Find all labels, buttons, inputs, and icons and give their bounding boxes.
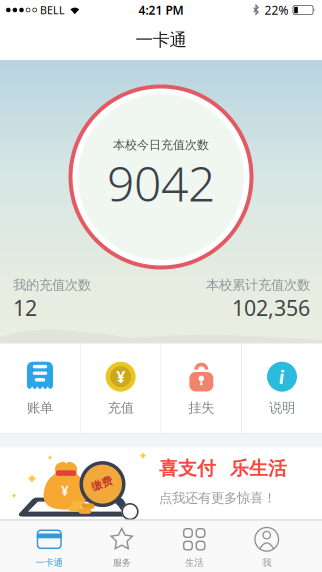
staticText: 生活 — [185, 557, 203, 568]
button[interactable]: 一卡通 — [13, 520, 85, 572]
staticText: 我的充值次数 — [13, 277, 91, 293]
button[interactable]: i — [242, 344, 322, 433]
staticText: 22% — [264, 2, 288, 18]
button[interactable]: ¥ — [0, 448, 322, 520]
staticText: ¥ — [61, 482, 69, 499]
staticText: 9042 — [107, 151, 215, 215]
staticText: 一卡通 — [135, 29, 186, 51]
staticText: 乐生活 — [230, 457, 287, 480]
staticText: i — [279, 364, 285, 389]
button[interactable]: 服务 — [85, 520, 158, 572]
staticText: 本校今日充值次数 — [113, 138, 209, 152]
staticText: 服务 — [113, 557, 131, 568]
staticText: 4:21 PM — [138, 2, 183, 18]
staticText: 说明 — [269, 400, 295, 416]
staticText: 12 — [13, 294, 37, 322]
staticText: 账单 — [27, 400, 53, 416]
staticText: 挂失 — [188, 400, 214, 416]
button[interactable]: ¥ — [81, 344, 161, 433]
staticText: 充值 — [108, 400, 134, 416]
staticText: ¥ — [116, 366, 125, 387]
button[interactable]: 挂失 — [161, 344, 241, 433]
staticText: 喜支付 — [159, 457, 216, 480]
staticText: 缴费 — [91, 477, 113, 490]
button[interactable]: 我 — [230, 520, 303, 572]
staticText: 点我还有更多惊喜！ — [159, 490, 276, 506]
staticText: 本校累计充值次数 — [206, 277, 310, 293]
staticText: 一卡通 — [36, 557, 63, 568]
button[interactable]: 账单 — [0, 344, 80, 433]
button[interactable]: 生活 — [158, 520, 230, 572]
staticText: BELL — [40, 3, 65, 17]
staticText: 我 — [262, 557, 271, 568]
staticText: 102,356 — [232, 294, 310, 322]
